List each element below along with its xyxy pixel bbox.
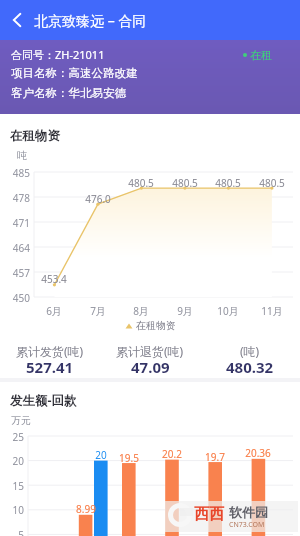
- staticText: 480.32: [226, 357, 274, 377]
- staticText: (吨): [240, 343, 260, 359]
- staticText: 47.09: [131, 357, 170, 377]
- staticText: 9月: [170, 304, 200, 318]
- staticText: 8.99: [68, 502, 104, 516]
- staticText: 20.36: [240, 446, 276, 460]
- staticText: 480.5: [167, 176, 203, 190]
- staticText: 10月: [213, 304, 243, 318]
- button[interactable]: (吨): [200, 343, 300, 379]
- staticText: 在租物资: [10, 128, 60, 144]
- staticText: 累计发货(吨): [16, 343, 84, 359]
- staticText: 8月: [126, 304, 156, 318]
- staticText: 发生额-回款: [10, 392, 77, 409]
- staticText: 480.5: [123, 176, 159, 190]
- staticText: 10: [3, 503, 24, 517]
- staticText: 19.5: [111, 451, 147, 465]
- staticText: 19.7: [197, 450, 233, 464]
- staticText: 万元: [11, 414, 31, 427]
- staticText: 480.5: [210, 176, 246, 190]
- staticText: 457: [9, 266, 30, 280]
- button[interactable]: Back: [0, 0, 32, 40]
- button[interactable]: 累计退货(吨): [100, 343, 200, 379]
- staticText: CN73.COM: [229, 520, 265, 530]
- staticText: 485: [9, 166, 30, 180]
- staticText: 6月: [39, 304, 69, 318]
- staticText: 480.5: [254, 176, 290, 190]
- staticText: 累计退货(吨): [116, 343, 184, 359]
- button[interactable]: 在租物资: [0, 319, 300, 332]
- staticText: 北京致臻远 – 合同: [34, 11, 147, 30]
- button[interactable]: 在租: [243, 48, 272, 62]
- staticText: 西西: [194, 505, 224, 524]
- staticText: 11月: [257, 304, 287, 318]
- staticText: 464: [9, 241, 30, 255]
- staticText: 527.41: [26, 357, 74, 377]
- staticText: 吨: [17, 149, 27, 162]
- staticText: 客户名称：华北易安德: [11, 86, 126, 100]
- button[interactable]: 累计发货(吨): [0, 343, 100, 379]
- staticText: 450: [9, 291, 30, 305]
- staticText: 软件园: [229, 504, 268, 520]
- staticText: 在租物资: [136, 319, 176, 332]
- staticText: 5: [3, 528, 24, 536]
- staticText: 合同号：ZH-21011: [11, 47, 105, 62]
- staticText: 478: [9, 191, 30, 205]
- staticText: 453.4: [36, 272, 72, 286]
- staticText: 7月: [83, 304, 113, 318]
- staticText: 25: [3, 430, 24, 444]
- staticText: 20.2: [154, 447, 190, 461]
- staticText: 在租: [250, 48, 272, 62]
- staticText: 15: [3, 479, 24, 493]
- staticText: 项目名称：高速公路改建: [11, 66, 138, 80]
- staticText: 20: [83, 448, 119, 462]
- staticText: 476.0: [80, 192, 116, 206]
- staticText: 20: [3, 454, 24, 468]
- staticText: 471: [9, 216, 30, 230]
